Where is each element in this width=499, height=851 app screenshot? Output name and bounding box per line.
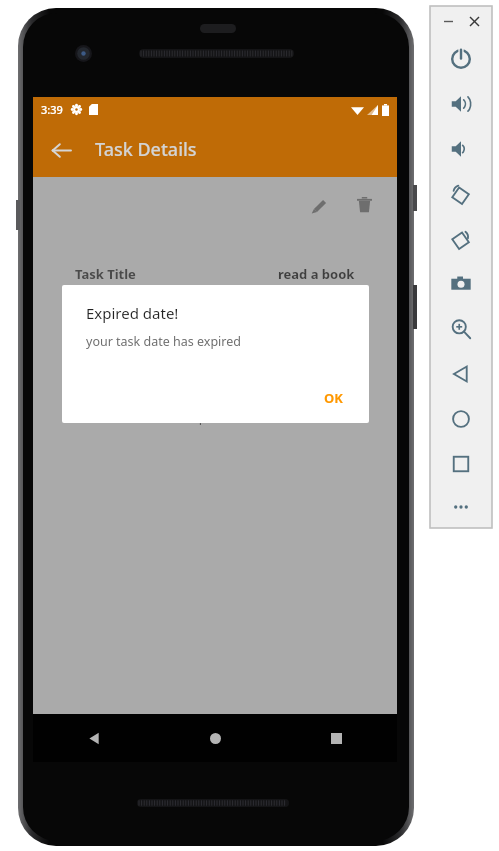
button[interactable]: More	[430, 486, 492, 528]
button[interactable]: Edit task	[301, 187, 335, 221]
button[interactable]: Back	[41, 130, 81, 170]
button[interactable]: Zoom	[430, 306, 492, 351]
staticText: Expired date!	[86, 303, 179, 323]
button[interactable]: Back	[430, 351, 492, 396]
button[interactable]: Rotate left	[430, 171, 492, 216]
button[interactable]: Rotate right	[430, 216, 492, 261]
staticText: your task date has expired	[86, 333, 241, 350]
button[interactable]: Delete task	[347, 187, 381, 221]
staticText: Task Title	[75, 265, 136, 283]
button[interactable]: Home	[430, 396, 492, 441]
button[interactable]: Minimize	[439, 12, 457, 30]
button[interactable]: Back	[33, 714, 155, 762]
staticText: Task State	[75, 408, 142, 426]
staticText: Date creation	[75, 297, 163, 315]
button[interactable]: Overview	[430, 441, 492, 486]
button[interactable]: Volume down	[430, 126, 492, 171]
staticText: Task Details	[95, 137, 197, 162]
staticText: read a book	[278, 265, 355, 283]
button[interactable]: Take screenshot	[430, 261, 492, 306]
button[interactable]: Recent apps	[276, 714, 397, 762]
button[interactable]: OK	[314, 383, 353, 413]
button[interactable]: Volume up	[430, 81, 492, 126]
button[interactable]: Power	[430, 36, 492, 81]
staticText: OK	[324, 389, 343, 407]
staticText: 3:39	[41, 102, 63, 117]
button[interactable]: Home	[155, 714, 276, 762]
staticText: Incomplete	[160, 408, 230, 426]
button[interactable]: Close	[465, 12, 483, 30]
